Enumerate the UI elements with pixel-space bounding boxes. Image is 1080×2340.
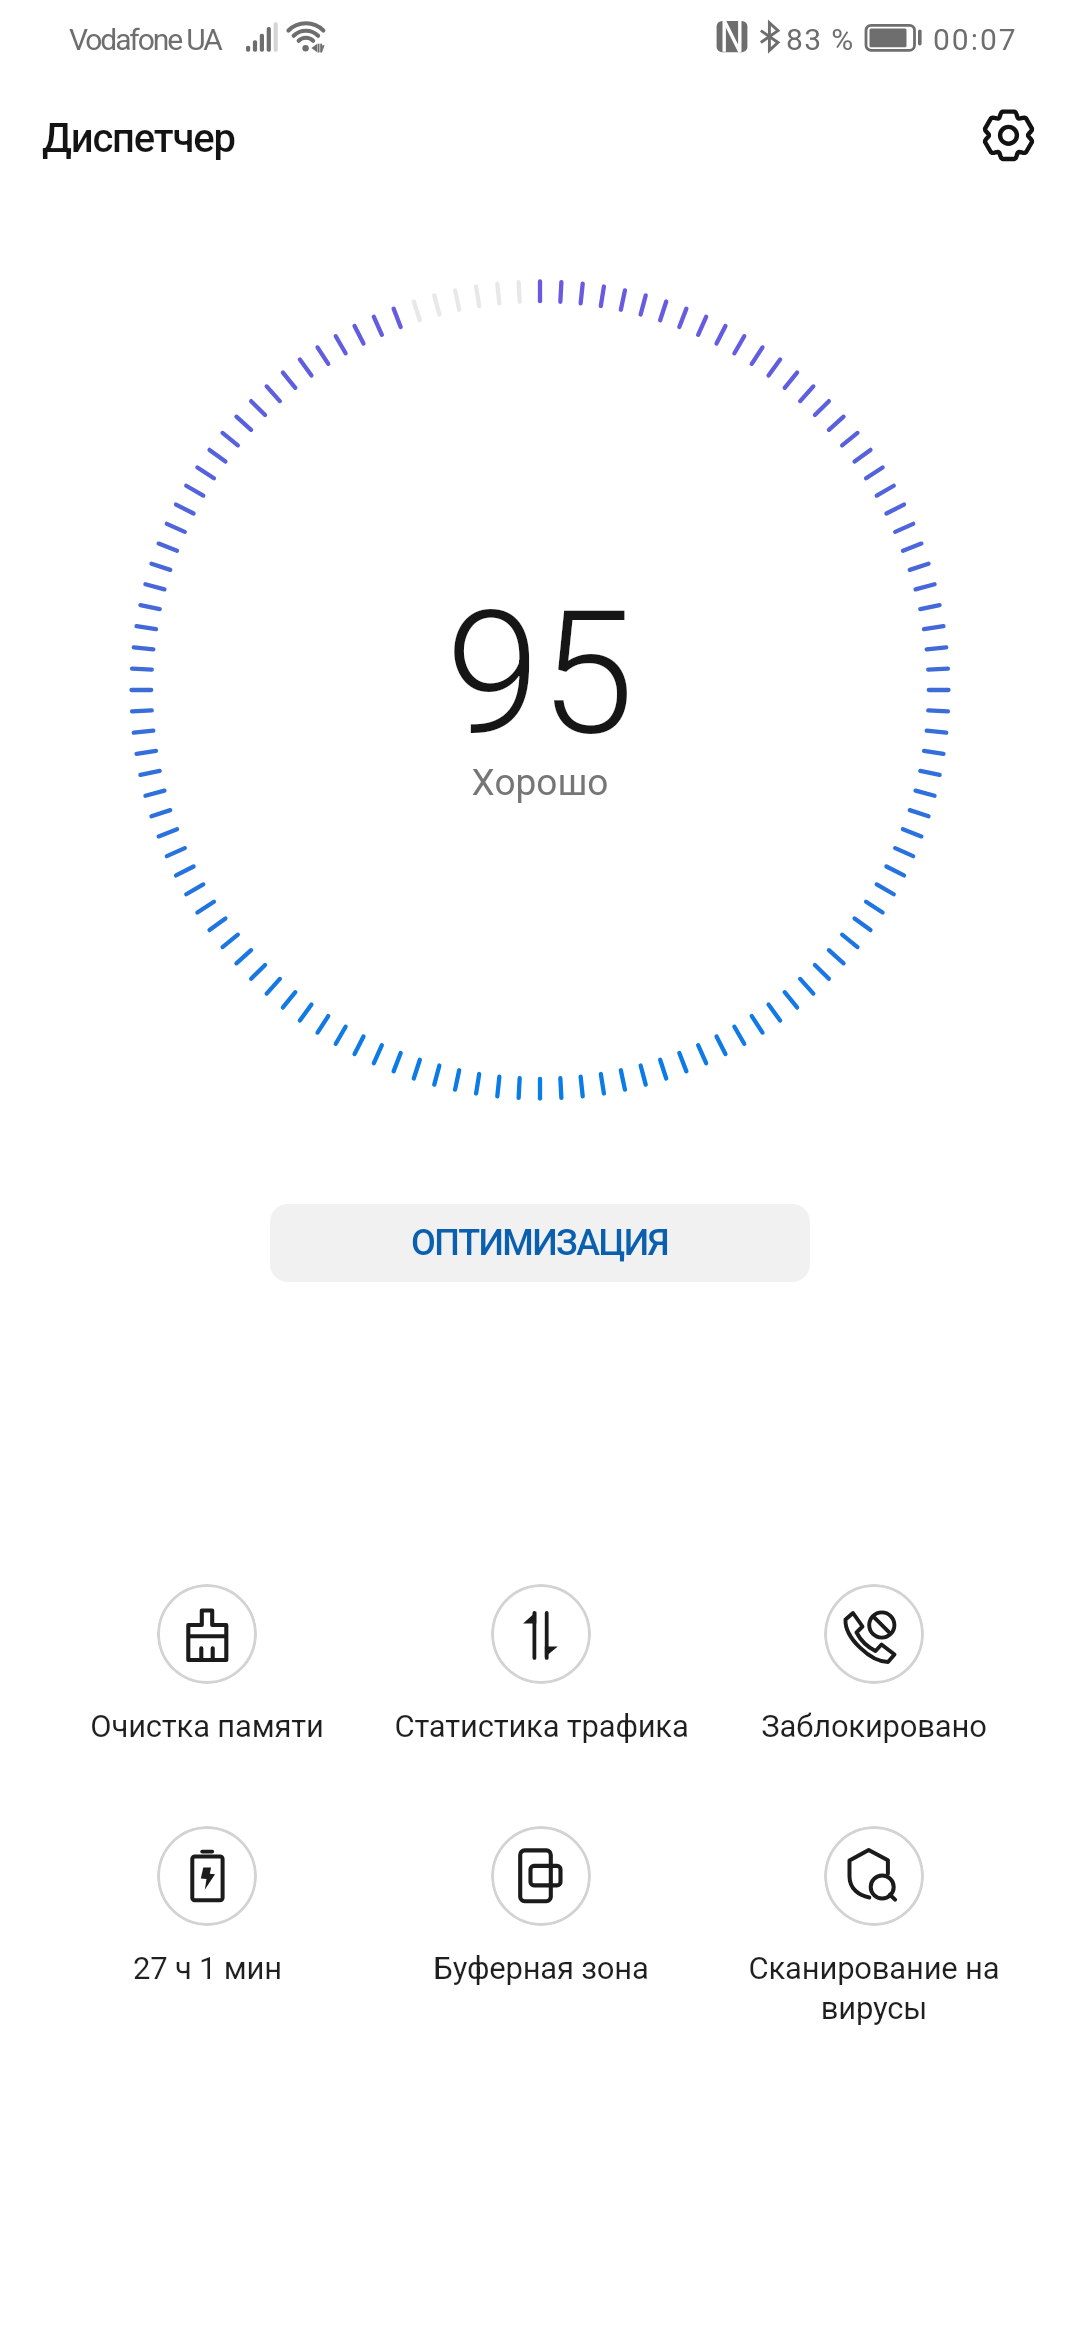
button[interactable]: Заблокировано — [709, 1584, 1039, 1744]
button[interactable]: 27 ч 1 мин — [42, 1826, 372, 1986]
staticText: Vodafone UA — [69, 22, 221, 57]
staticText: ОПТИМИЗАЦИЯ — [411, 1222, 669, 1264]
staticText: Сканирование на вирусы — [709, 1950, 1039, 2026]
staticText: 95 — [0, 574, 1080, 773]
staticText: 00:07 — [933, 22, 1018, 57]
staticText: 27 ч 1 мин — [133, 1950, 282, 1986]
staticText: 83 % — [786, 22, 855, 57]
button[interactable]: Статистика трафика — [376, 1584, 706, 1744]
staticText: Буферная зона — [433, 1950, 649, 1986]
staticText: Хорошо — [0, 761, 1080, 804]
button[interactable]: Settings — [964, 92, 1052, 180]
button[interactable]: ОПТИМИЗАЦИЯ — [270, 1204, 810, 1282]
staticText: Очистка памяти — [90, 1708, 324, 1744]
button[interactable]: Буферная зона — [376, 1826, 706, 1986]
staticText: Диспетчер — [42, 115, 235, 162]
button[interactable]: Сканирование на вирусы — [709, 1826, 1039, 2026]
staticText: Заблокировано — [761, 1708, 987, 1744]
button[interactable]: Очистка памяти — [42, 1584, 372, 1744]
staticText: Статистика трафика — [394, 1708, 689, 1744]
